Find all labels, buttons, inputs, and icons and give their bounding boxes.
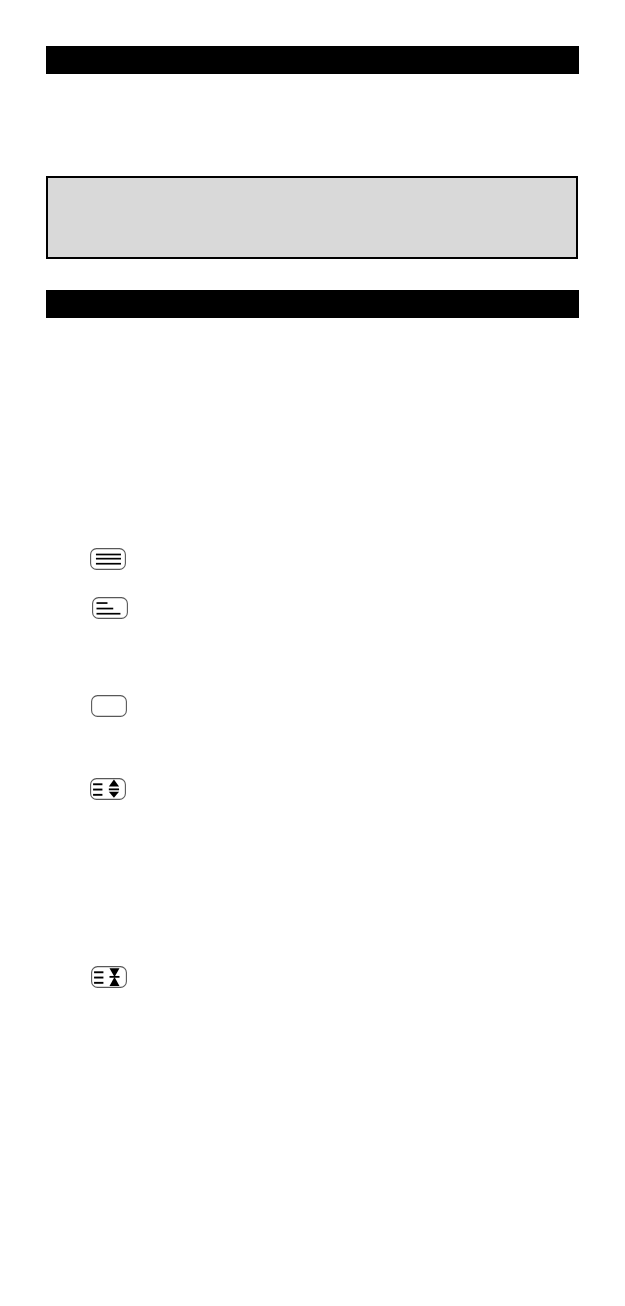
button[interactable]: List view bbox=[90, 548, 126, 570]
button[interactable]: Collapse bbox=[91, 966, 127, 988]
button[interactable]: Blank item bbox=[91, 695, 127, 717]
button[interactable]: Sort ascending bbox=[90, 778, 126, 800]
button[interactable]: Content panel bbox=[46, 176, 578, 259]
button[interactable]: Text details bbox=[92, 597, 128, 619]
